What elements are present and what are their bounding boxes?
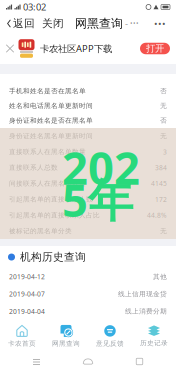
button[interactable]: Recents — [124, 352, 154, 371]
staticText: 2019-04-07 — [9, 290, 45, 298]
staticText: 5年 — [62, 169, 133, 229]
button[interactable]: 返回 — [3, 14, 39, 33]
staticText: 意见反馈 — [96, 339, 124, 348]
staticText: 身份证姓名黑名单更新时间 — [9, 132, 93, 140]
staticText: 引起黑名单的直接联系人占比 — [9, 211, 100, 219]
staticText: 03:02 — [21, 1, 46, 13]
staticText: 384 — [155, 163, 167, 172]
button[interactable]: 意见反馈 — [88, 320, 132, 352]
button[interactable]: Close banner — [2, 33, 18, 64]
staticText: ••• — [130, 19, 139, 28]
button[interactable]: Menu — [21, 352, 51, 371]
staticText: 3 — [163, 147, 167, 156]
staticText: 机构历史查询 — [20, 250, 86, 264]
button[interactable]: Home — [73, 352, 103, 371]
staticText: 直接联系人总数 — [9, 164, 58, 172]
button[interactable]: 打开 — [140, 43, 170, 54]
staticText: 无 — [160, 132, 167, 140]
button[interactable]: 卡农首页 — [0, 320, 44, 352]
staticText: 历史记录 — [140, 339, 168, 347]
staticText: 其他 — [153, 273, 167, 281]
button[interactable]: 关闭 — [39, 14, 67, 33]
staticText: 返回 — [13, 17, 35, 30]
staticText: 直接联系人在黑名单数量 — [9, 148, 86, 156]
staticText: 网黑查询 — [75, 16, 123, 31]
staticText: 线上消费分期 — [125, 307, 167, 315]
staticText: ••• — [154, 17, 166, 30]
staticText: 身份证和姓名是否在黑名单 — [9, 116, 93, 125]
staticText: 2019-04-04 — [9, 307, 45, 316]
staticText: 否 — [160, 116, 167, 125]
staticText: 2019-04-12 — [9, 272, 45, 281]
staticText: 手机和姓名是否在黑名单 — [9, 87, 86, 95]
staticText: 卡农首页 — [8, 339, 36, 348]
staticText: 202 — [62, 137, 140, 197]
staticText: 44.8% — [147, 211, 167, 220]
staticText: 卡农社区APP下载 — [40, 42, 112, 55]
staticText: 否 — [160, 87, 167, 95]
button[interactable]: 历史记录 — [132, 320, 176, 352]
staticText: 4145 — [151, 179, 167, 188]
staticText: 间接联系人在黑名单数量 — [9, 179, 86, 188]
button[interactable]: 网黑查询 — [44, 320, 88, 352]
button[interactable]: More — [147, 14, 173, 33]
staticText: - — [125, 17, 128, 30]
staticText: 无 — [160, 227, 167, 235]
staticText: 172 — [155, 195, 167, 204]
staticText: 关闭 — [42, 17, 64, 30]
staticText: 姓名和电话黑名单更新时间 — [9, 102, 93, 110]
staticText: 网黑查询 — [52, 339, 80, 348]
staticText: 无 — [160, 102, 167, 110]
staticText: 被标记的黑名单分类 — [9, 227, 72, 235]
staticText: 线上信用现金贷 — [118, 290, 167, 298]
staticText: 引起黑名单的直接联系人数 — [9, 195, 93, 203]
staticText: 打开 — [146, 43, 164, 54]
